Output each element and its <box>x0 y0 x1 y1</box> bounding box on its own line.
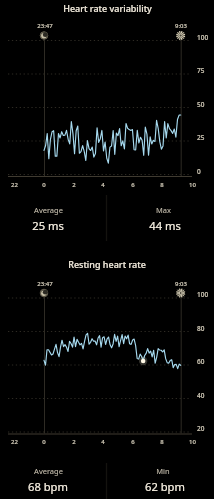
staticText: 25 ms <box>32 218 64 233</box>
staticText: 22 <box>11 181 18 189</box>
staticText: 6 <box>131 181 135 189</box>
staticText: 80 <box>197 324 205 333</box>
button[interactable]: Heart rate variability chart <box>0 0 214 196</box>
button[interactable]: Resting heart rate chart <box>0 250 214 463</box>
staticText: 10 <box>189 181 196 189</box>
staticText: 22 <box>11 438 18 446</box>
staticText: 9:03 <box>175 280 187 288</box>
staticText: 10 <box>189 438 196 446</box>
staticText: Heart rate variability <box>63 2 152 14</box>
staticText: 0 <box>197 167 201 176</box>
staticText: 44 ms <box>149 218 181 233</box>
staticText: 25 <box>197 133 205 142</box>
button[interactable]: Resting heart rate min 62 bpm <box>107 463 214 499</box>
staticText: 62 bpm <box>145 479 185 494</box>
staticText: 23:47 <box>37 280 53 288</box>
button[interactable]: Heart rate variability average 25 ms <box>0 196 106 242</box>
button[interactable]: Resting heart rate average 68 bpm <box>0 463 106 499</box>
staticText: 20 <box>197 424 205 433</box>
staticText: 40 <box>197 391 205 400</box>
staticText: 68 bpm <box>28 479 68 494</box>
staticText: 0 <box>42 438 46 446</box>
staticText: Resting heart rate <box>68 258 146 270</box>
staticText: 23:47 <box>37 22 53 30</box>
button[interactable]: Heart rate variability max 44 ms <box>107 196 214 242</box>
staticText: Average <box>34 466 63 476</box>
staticText: 100 <box>197 33 209 42</box>
staticText: Min <box>156 466 170 476</box>
staticText: 0 <box>42 181 46 189</box>
staticText: 100 <box>197 290 209 299</box>
staticText: 4 <box>101 438 105 446</box>
staticText: 4 <box>101 181 105 189</box>
staticText: 6 <box>131 438 135 446</box>
staticText: 9:03 <box>175 22 187 30</box>
staticText: 8 <box>160 181 164 189</box>
staticText: 2 <box>72 438 76 446</box>
staticText: 50 <box>197 100 205 109</box>
staticText: 8 <box>160 438 164 446</box>
staticText: 2 <box>72 181 76 189</box>
staticText: Average <box>34 205 63 215</box>
staticText: 75 <box>197 66 205 75</box>
staticText: 60 <box>197 357 205 366</box>
staticText: Max <box>156 205 171 215</box>
